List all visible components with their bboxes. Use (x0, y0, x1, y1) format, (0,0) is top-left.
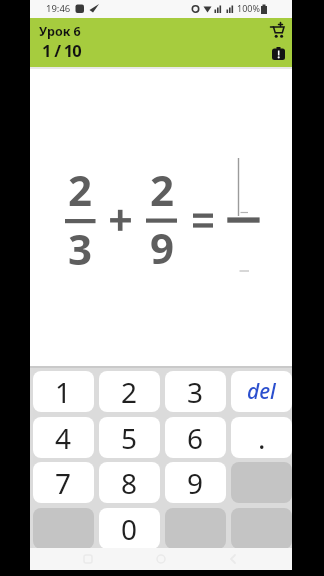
button[interactable]: 7 (33, 462, 94, 503)
staticText: 5 (121, 419, 138, 457)
staticText: 2 (150, 161, 175, 218)
staticText: 2 (121, 373, 138, 411)
staticText: 4 (55, 419, 72, 457)
button[interactable] (231, 462, 292, 503)
button[interactable]: del (231, 371, 292, 412)
button[interactable]: 3 (165, 371, 226, 412)
staticText: 2 (68, 161, 93, 218)
button[interactable]: 4 (33, 417, 94, 458)
staticText: . (258, 419, 266, 457)
staticText: del (247, 377, 276, 406)
staticText: 8 (121, 464, 138, 502)
button[interactable]: . (231, 417, 292, 458)
staticText: 3 (68, 220, 93, 277)
staticText: Урок 6 (39, 23, 81, 40)
button[interactable]: 8 (99, 462, 160, 503)
staticText: 1 (55, 373, 72, 411)
staticText: 9 (187, 464, 204, 502)
staticText: 1 / 10 (42, 39, 81, 61)
button[interactable]: 9 (165, 462, 226, 503)
staticText: 19:46 (46, 2, 71, 15)
button[interactable] (231, 508, 292, 549)
staticText: 3 (187, 373, 204, 411)
staticText: 9 (150, 219, 175, 276)
staticText: 7 (55, 464, 72, 502)
button[interactable] (272, 47, 285, 60)
button[interactable] (270, 24, 285, 38)
staticText: 100% (237, 2, 260, 14)
button[interactable]: 2 (99, 371, 160, 412)
button[interactable]: 5 (99, 417, 160, 458)
staticText: 0 (121, 510, 138, 548)
button[interactable]: 6 (165, 417, 226, 458)
button[interactable]: 0 (99, 508, 160, 549)
staticText: 6 (187, 419, 204, 457)
button[interactable] (33, 508, 94, 549)
button[interactable]: 1 (33, 371, 94, 412)
button[interactable] (165, 508, 226, 549)
